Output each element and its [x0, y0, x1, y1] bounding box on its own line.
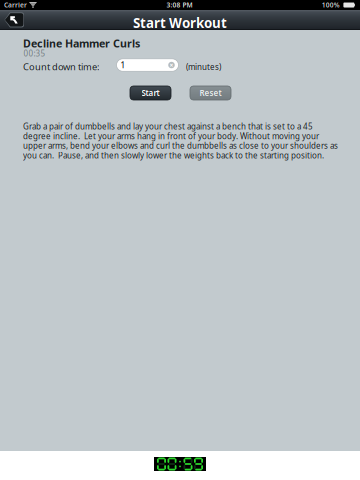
staticText: ×: [169, 61, 173, 69]
button[interactable]: Back: [4, 12, 26, 28]
button[interactable]: Start: [130, 86, 171, 100]
button[interactable]: Clear text: [166, 59, 176, 71]
button[interactable]: Reset: [190, 86, 231, 100]
staticText: Decline Hammer Curls: [23, 36, 140, 50]
staticText: 00:35: [23, 48, 45, 59]
staticText: 3:08 PM: [166, 1, 192, 9]
staticText: Carrier: [4, 1, 27, 9]
staticText: Start Workout: [133, 14, 227, 32]
staticText: 100%: [322, 1, 340, 9]
staticText: Count down time:: [23, 60, 100, 73]
staticText: (minutes): [186, 62, 221, 72]
staticText: 1: [120, 60, 125, 70]
staticText: Reset: [199, 88, 221, 98]
staticText: Start: [141, 88, 159, 98]
staticText: Grab a pair of dumbbells and lay your ch…: [23, 121, 338, 161]
